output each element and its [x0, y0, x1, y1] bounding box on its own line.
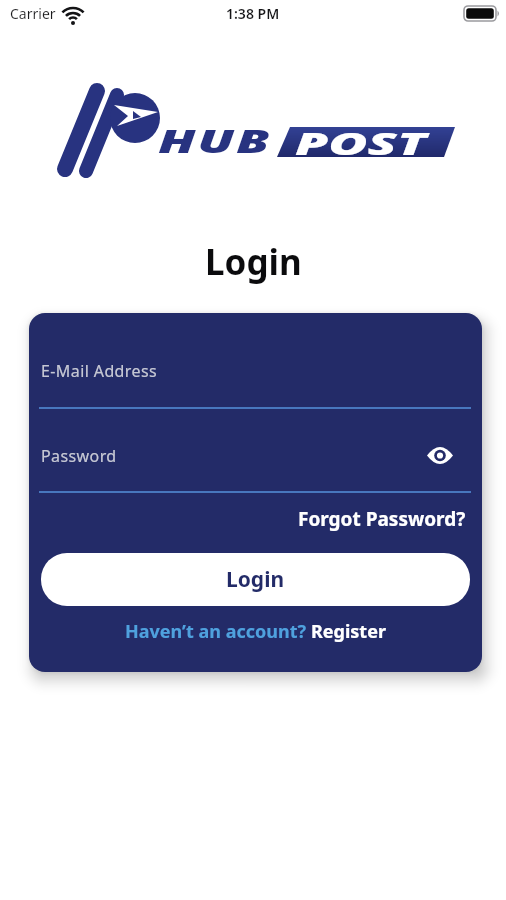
staticText: Register [311, 619, 386, 644]
staticText: POST [295, 123, 427, 164]
staticText: Password [41, 445, 117, 467]
staticText: Haven’t an account? [125, 619, 311, 644]
staticText: Carrier [10, 4, 56, 23]
staticText: E-Mail Address [41, 360, 158, 382]
staticText: Forgot Password? [298, 506, 466, 532]
staticText: Login [226, 565, 285, 594]
staticText: HUB [158, 120, 272, 162]
staticText: 1:38 PM [226, 4, 280, 23]
staticText: Login [205, 238, 302, 286]
